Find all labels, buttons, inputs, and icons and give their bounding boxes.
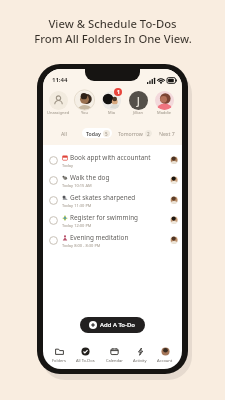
staticText: J [137, 94, 140, 108]
button[interactable]: Tomorrow [118, 128, 152, 138]
staticText: Tomorrow [118, 130, 143, 137]
staticText: Jillian [133, 110, 143, 115]
staticText: Maddie [157, 110, 172, 115]
staticText: Next 7 Da [159, 130, 182, 137]
staticText: All [61, 130, 67, 137]
button[interactable]: Unassigned [45, 90, 71, 115]
staticText: Walk the dog [70, 173, 110, 182]
staticText: Today 8:00 - 8:30 PM [62, 243, 101, 248]
button[interactable]: All To-Dos [75, 347, 96, 363]
staticText: From All Folders In One View. [34, 31, 192, 46]
button[interactable]: All [61, 128, 67, 138]
button[interactable]: Maddie [151, 90, 177, 115]
staticText: All To-Dos [76, 358, 95, 363]
button[interactable]: Evening meditation [43, 230, 182, 250]
button[interactable]: Folders [51, 347, 67, 363]
button[interactable]: 1 [98, 90, 124, 115]
button[interactable]: Account [156, 347, 174, 363]
staticText: Evening meditation [70, 233, 129, 242]
staticText: Mia [108, 110, 115, 115]
button[interactable]: Book appt with accountant [43, 150, 182, 170]
staticText: Activity [133, 358, 147, 363]
staticText: Account [157, 358, 173, 363]
staticText: 2 [147, 131, 150, 137]
button[interactable]: Get skates sharpened [43, 190, 182, 210]
staticText: 5 [105, 131, 108, 137]
staticText: Add A To-Do [100, 321, 136, 329]
staticText: 11:44 [52, 76, 68, 84]
staticText: 1 [117, 89, 120, 96]
staticText: Today 10:15 AM [62, 183, 92, 188]
button[interactable]: You [71, 90, 97, 115]
button[interactable]: Register for swimming [43, 210, 182, 230]
staticText: You [81, 110, 88, 115]
button[interactable]: Next 7 Da [159, 128, 182, 138]
staticText: View & Schedule To-Dos [48, 16, 177, 31]
button[interactable]: J [125, 90, 151, 115]
button[interactable]: Activity [132, 347, 148, 363]
button[interactable]: Today [82, 128, 112, 138]
button[interactable]: Add A To-Do [80, 317, 145, 333]
staticText: Unassigned [47, 110, 70, 115]
staticText: Book appt with accountant [70, 153, 151, 162]
staticText: Today [62, 163, 74, 168]
staticText: Today 12:00 PM [62, 223, 92, 228]
button[interactable]: Calendar [105, 347, 124, 363]
staticText: Calendar [106, 358, 123, 363]
staticText: Get skates sharpened [70, 193, 136, 202]
staticText: Folders [52, 358, 66, 363]
button[interactable]: Walk the dog [43, 170, 182, 190]
staticText: Today [86, 130, 101, 137]
staticText: Register for swimming [70, 213, 139, 222]
staticText: Today 11:30 PM [62, 203, 92, 208]
